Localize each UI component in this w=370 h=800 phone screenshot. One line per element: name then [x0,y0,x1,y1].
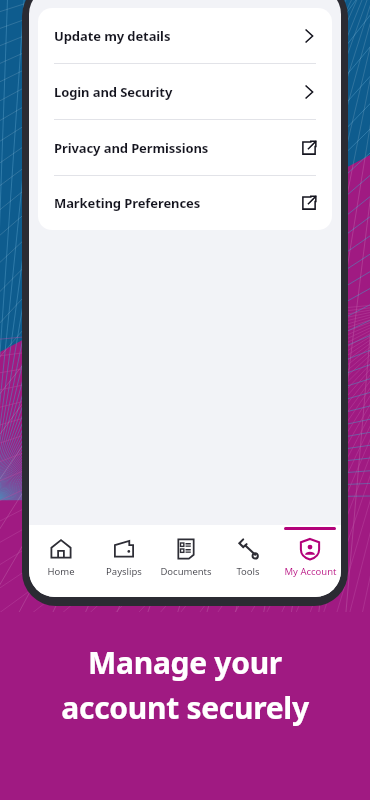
button[interactable]: Home [29,525,92,597]
staticText: Payslips [106,565,142,578]
staticText: Marketing Preferences [54,194,300,212]
button[interactable]: Payslips [92,525,155,597]
staticText: Update my details [54,27,300,45]
staticText: Documents [160,565,212,578]
staticText: Home [47,565,75,578]
button[interactable]: My Account [279,525,341,597]
button[interactable]: Privacy and Permissions [38,120,332,175]
staticText: My Account [284,565,337,578]
staticText: Privacy and Permissions [54,139,300,157]
staticText: Manage your [88,642,282,683]
button[interactable]: Marketing Preferences [38,176,332,230]
staticText: account securely [61,687,309,728]
staticText: Tools [236,565,260,578]
button[interactable]: Documents [155,525,217,597]
button[interactable]: Tools [217,525,279,597]
button[interactable]: Login and Security [38,64,332,119]
button[interactable]: Update my details [38,8,332,63]
staticText: Login and Security [54,83,300,101]
